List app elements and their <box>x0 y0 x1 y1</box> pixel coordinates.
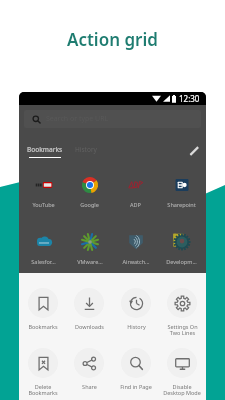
button[interactable]: Edit bookmarks <box>187 144 201 158</box>
staticText: Share <box>82 383 97 390</box>
staticText: Find in Page <box>120 383 152 390</box>
staticText: Downloads <box>75 323 104 330</box>
staticText: 12:30 <box>179 93 200 104</box>
button[interactable]: Airwatch... <box>114 233 157 265</box>
staticText: Sharepoint <box>167 201 196 208</box>
button[interactable]: YouTube <box>22 176 65 208</box>
staticText: Delete Bookmarks <box>28 383 58 397</box>
button[interactable]: Share <box>67 348 111 390</box>
staticText: Action grid <box>67 28 158 51</box>
staticText: VMware... <box>77 258 103 265</box>
button[interactable]: Find in Page <box>114 348 158 390</box>
staticText: Settings On Two Lines <box>167 323 198 337</box>
staticText: Bookmarks <box>28 323 58 330</box>
button[interactable]: History <box>114 288 158 330</box>
button[interactable]: Settings On Two Lines <box>160 288 204 337</box>
button[interactable]: Google <box>68 176 111 208</box>
staticText: YouTube <box>32 201 55 208</box>
staticText: Bookmarks <box>27 145 63 154</box>
button[interactable]: Search or type URL <box>24 110 201 128</box>
staticText: Airwatch... <box>122 258 150 265</box>
button[interactable]: Delete Bookmarks <box>21 348 65 397</box>
button[interactable]: Bookmarks <box>21 288 65 330</box>
button[interactable]: Developm... <box>160 233 203 265</box>
staticText: Disable Desktop Mode <box>163 383 201 397</box>
staticText: History <box>127 323 146 330</box>
button[interactable]: Disable Desktop Mode <box>160 348 204 397</box>
button[interactable]: ADP <box>114 176 157 208</box>
button[interactable]: Bookmarks <box>27 145 63 158</box>
staticText: Google <box>80 201 99 208</box>
button[interactable]: History <box>75 145 97 154</box>
button[interactable]: Salesfor... <box>22 233 65 265</box>
staticText: ADP <box>130 201 141 208</box>
staticText: Salesfor... <box>31 258 56 265</box>
button[interactable]: Downloads <box>67 288 111 330</box>
staticText: Developm... <box>166 258 197 265</box>
button[interactable]: VMware... <box>68 233 111 265</box>
button[interactable]: Sharepoint <box>160 176 203 208</box>
